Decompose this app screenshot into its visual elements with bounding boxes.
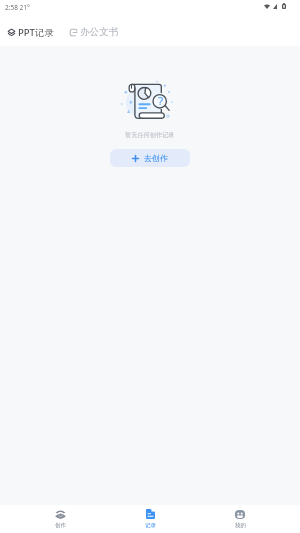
button[interactable]: 我的 — [195, 505, 285, 533]
button[interactable]: 记录 — [105, 505, 195, 533]
staticText: 办公文书 — [80, 26, 118, 38]
staticText: 暂无任何创作记录 — [125, 131, 175, 139]
staticText: ? — [158, 93, 164, 105]
staticText: 创作 — [55, 522, 66, 529]
button[interactable]: 创作 — [15, 505, 105, 533]
button[interactable]: PPT记录 — [8, 26, 54, 39]
staticText: 记录 — [145, 522, 156, 529]
staticText: PPT记录 — [18, 26, 54, 39]
staticText: 2:58 21° — [5, 3, 30, 12]
staticText: 我的 — [235, 522, 246, 529]
button[interactable]: 办公文书 — [70, 26, 118, 38]
button[interactable]: 去创作 — [110, 149, 190, 167]
staticText: 去创作 — [144, 153, 168, 163]
